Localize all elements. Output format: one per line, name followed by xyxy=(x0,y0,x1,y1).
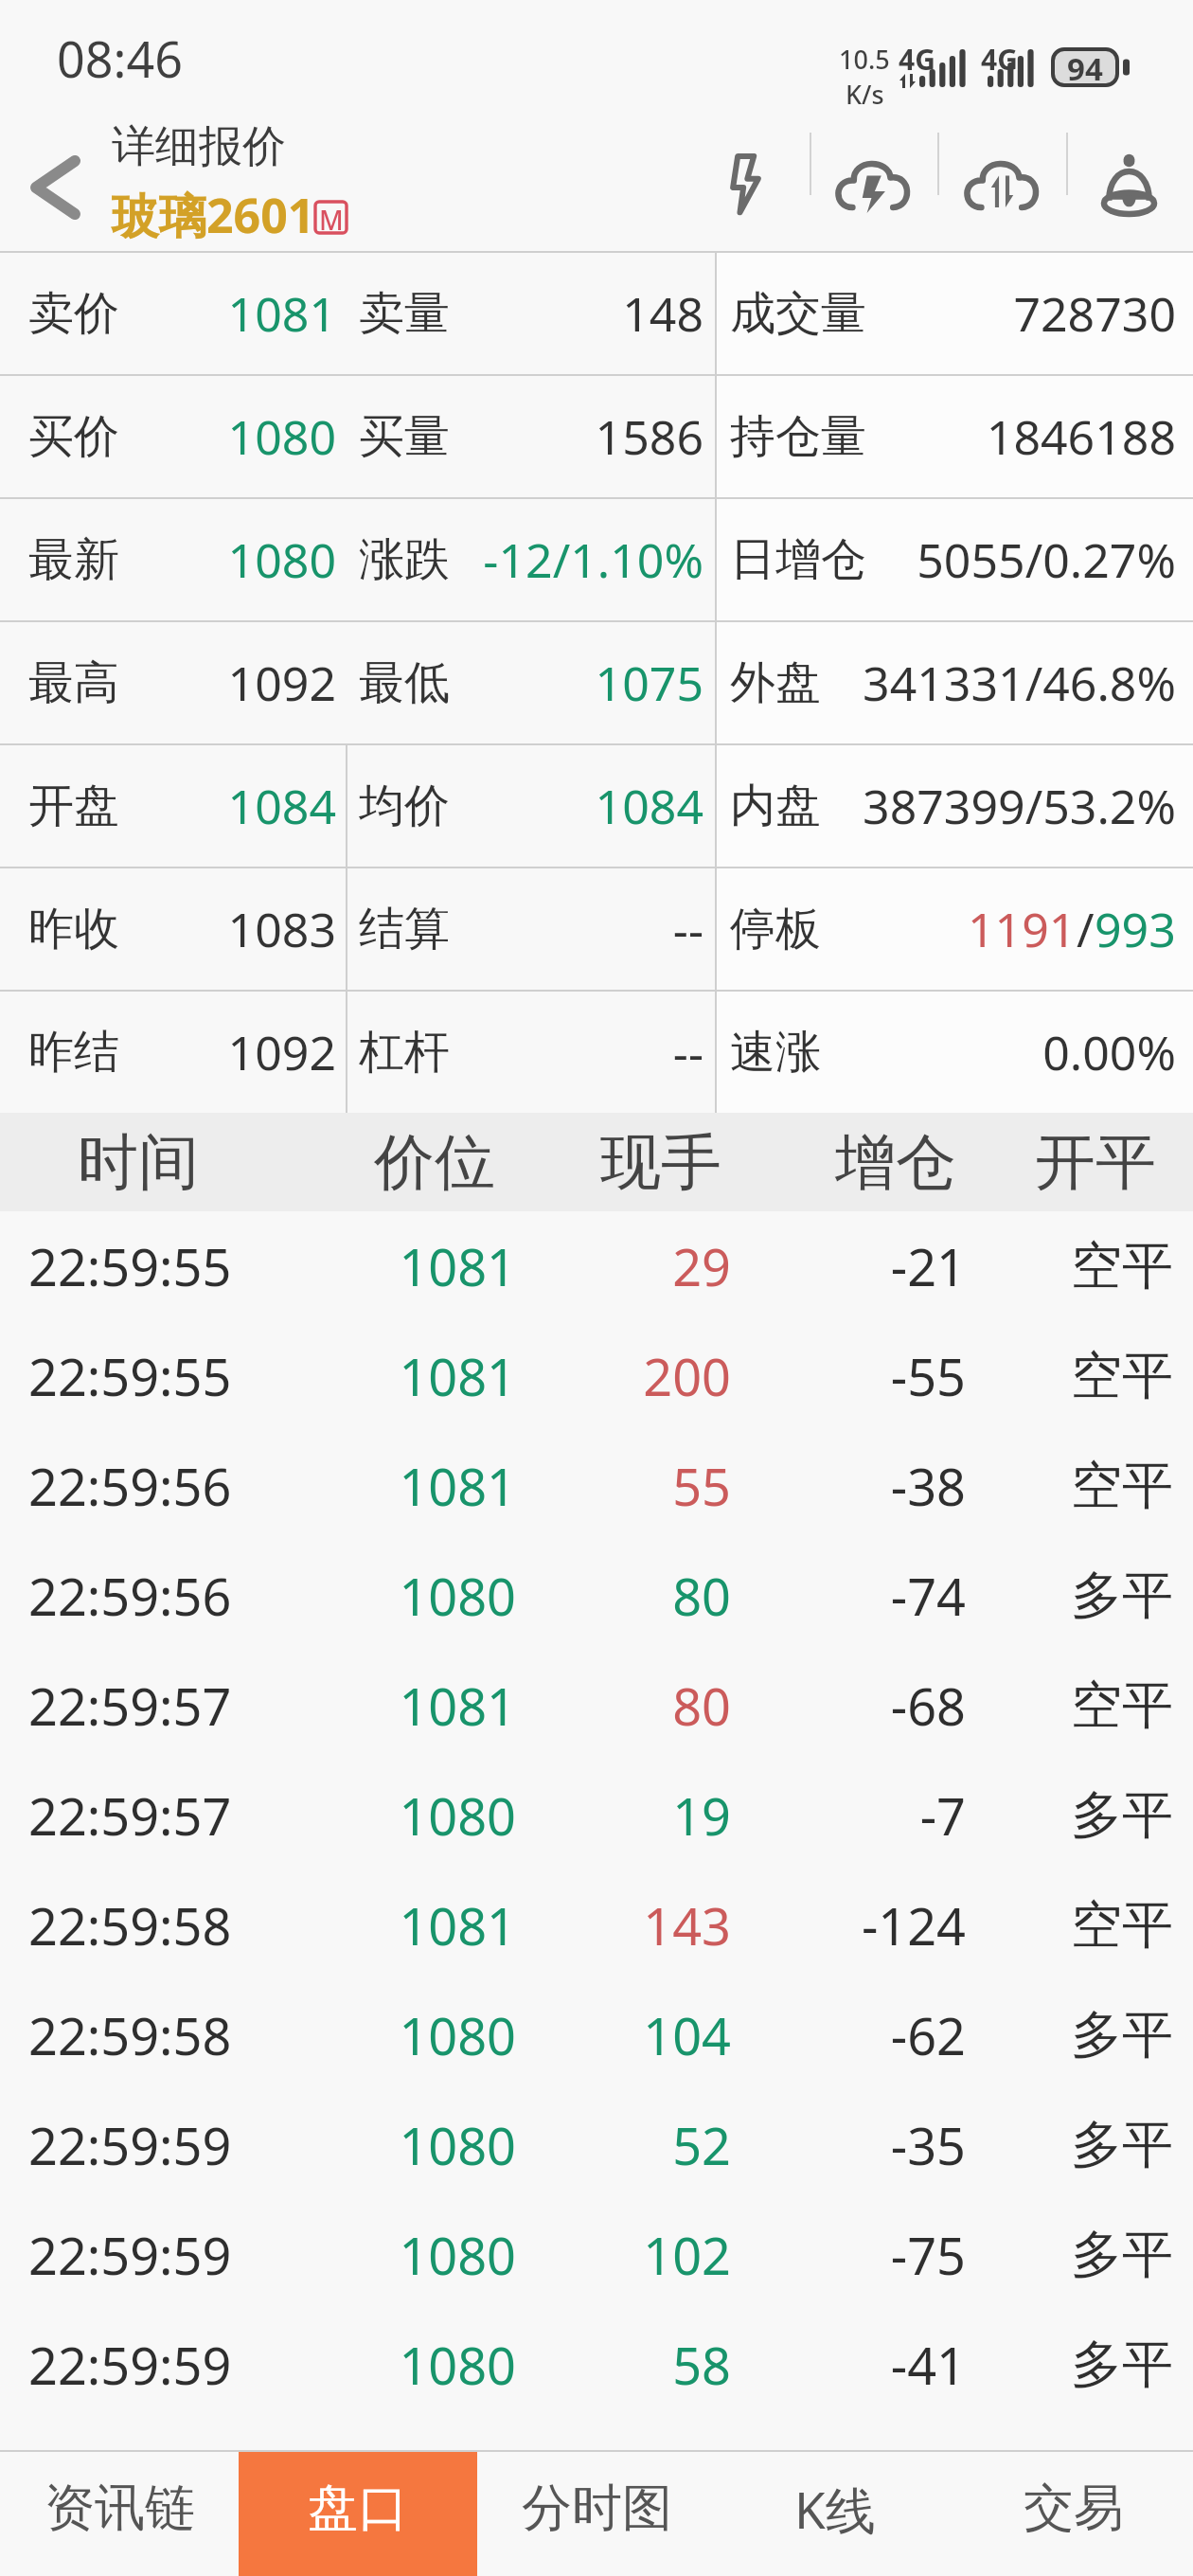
button[interactable]: 22:59:59 xyxy=(0,2090,1193,2200)
staticText: 387399/53.2% xyxy=(821,774,1176,838)
staticText: 728730 xyxy=(866,281,1176,346)
staticText: 昨收 xyxy=(28,901,119,957)
staticText: 空平 xyxy=(975,1454,1173,1518)
staticText: 1080 xyxy=(294,2220,516,2290)
staticText: 0.00% xyxy=(821,1020,1176,1084)
staticText: -55 xyxy=(748,1341,966,1411)
staticText: 价位 xyxy=(374,1124,495,1201)
button[interactable]: 22:59:57 xyxy=(0,1761,1193,1870)
button[interactable]: Cloud sync xyxy=(947,116,1057,251)
staticText: 结算 xyxy=(359,901,450,957)
button[interactable]: 22:59:56 xyxy=(0,1431,1193,1541)
staticText: 29 xyxy=(530,1231,731,1301)
button[interactable]: 22:59:55 xyxy=(0,1321,1193,1431)
button[interactable]: 22:59:57 xyxy=(0,1651,1193,1761)
button[interactable]: 分时图 xyxy=(477,2452,716,2576)
staticText: K线 xyxy=(794,2475,876,2543)
staticText: -- xyxy=(450,1020,703,1084)
staticText: 玻璃2601 xyxy=(112,183,315,247)
staticText: 4G xyxy=(981,40,1018,79)
button[interactable]: 22:59:59 xyxy=(0,2200,1193,2310)
staticText: 1080 xyxy=(294,2000,516,2070)
staticText: 1081 xyxy=(294,1231,516,1301)
staticText: 1080 xyxy=(119,528,336,592)
staticText: 多平 xyxy=(975,2223,1173,2287)
staticText: -7 xyxy=(748,1780,966,1851)
staticText: 现手 xyxy=(600,1124,721,1201)
staticText: 成交量 xyxy=(730,285,866,342)
staticText: 80 xyxy=(530,1561,731,1631)
staticText: 交易 xyxy=(1024,2477,1124,2540)
staticText: 1586 xyxy=(450,404,703,469)
staticText: 空平 xyxy=(975,1893,1173,1958)
staticText: 空平 xyxy=(975,1673,1173,1738)
button[interactable]: Alarm xyxy=(1074,116,1184,251)
staticText: 多平 xyxy=(975,2113,1173,2177)
staticText: 22:59:56 xyxy=(28,1451,232,1521)
staticText: 19 xyxy=(530,1780,731,1851)
staticText: 993 xyxy=(1095,897,1176,961)
staticText: -- xyxy=(450,897,703,961)
staticText: 1092 xyxy=(119,1020,336,1084)
staticText: 1080 xyxy=(294,1780,516,1851)
staticText: 341331/46.8% xyxy=(821,651,1176,715)
staticText: 停板 xyxy=(730,901,821,957)
button[interactable]: 22:59:58 xyxy=(0,1870,1193,1980)
button[interactable]: 交易 xyxy=(954,2452,1193,2576)
staticText: 增仓 xyxy=(835,1124,956,1201)
staticText: 148 xyxy=(450,281,703,346)
button[interactable]: 22:59:59 xyxy=(0,2310,1193,2420)
staticText: 1083 xyxy=(119,897,336,961)
button[interactable]: Cloud alert xyxy=(818,116,928,251)
staticText: 1191 xyxy=(968,897,1077,961)
staticText: 买量 xyxy=(359,408,450,465)
button[interactable]: 22:59:55 xyxy=(0,1211,1193,1321)
button[interactable]: 22:59:56 xyxy=(0,1541,1193,1651)
staticText: 盘口 xyxy=(308,2477,408,2540)
staticText: 卖量 xyxy=(359,285,450,342)
staticText: 内盘 xyxy=(730,778,821,834)
staticText: 买价 xyxy=(28,408,119,465)
staticText: 22:59:55 xyxy=(28,1341,232,1411)
staticText: 22:59:55 xyxy=(28,1231,232,1301)
staticText: 1075 xyxy=(450,651,703,715)
staticText: 22:59:57 xyxy=(28,1780,232,1851)
staticText: 最高 xyxy=(28,654,119,711)
staticText: 空平 xyxy=(975,1234,1173,1298)
button[interactable]: 盘口 xyxy=(239,2452,477,2576)
staticText: -38 xyxy=(748,1451,966,1521)
staticText: 外盘 xyxy=(730,654,821,711)
staticText: 多平 xyxy=(975,1783,1173,1848)
staticText: 时间 xyxy=(78,1124,199,1201)
staticText: 1080 xyxy=(294,1561,516,1631)
staticText: / xyxy=(1077,897,1095,961)
staticText: 22:59:58 xyxy=(28,2000,232,2070)
staticText: 1081 xyxy=(119,281,336,346)
staticText: 多平 xyxy=(975,2333,1173,2397)
button[interactable]: 资讯链 xyxy=(0,2452,239,2576)
staticText: 08:46 xyxy=(57,25,183,92)
staticText: 昨结 xyxy=(28,1024,119,1081)
staticText: 卖价 xyxy=(28,285,119,342)
staticText: 分时图 xyxy=(522,2477,672,2540)
staticText: 22:59:59 xyxy=(28,2220,232,2290)
button[interactable]: Back xyxy=(0,116,112,251)
staticText: M xyxy=(319,202,344,233)
staticText: 22:59:56 xyxy=(28,1561,232,1631)
staticText: 1846188 xyxy=(866,404,1176,469)
staticText: 52 xyxy=(530,2110,731,2180)
staticText: 1081 xyxy=(294,1671,516,1741)
button[interactable]: 22:59:58 xyxy=(0,1980,1193,2090)
staticText: 10.5 xyxy=(839,42,890,77)
staticText: 94 xyxy=(1051,47,1119,87)
staticText: 102 xyxy=(530,2220,731,2290)
staticText: -62 xyxy=(748,2000,966,2070)
staticText: 80 xyxy=(530,1671,731,1741)
staticText: 22:59:58 xyxy=(28,1890,232,1960)
staticText: 多平 xyxy=(975,2003,1173,2067)
staticText: 22:59:59 xyxy=(28,2330,232,2400)
button[interactable]: Flash xyxy=(690,116,800,251)
button[interactable]: K线 xyxy=(716,2452,954,2576)
staticText: 143 xyxy=(530,1890,731,1960)
staticText: 1081 xyxy=(294,1451,516,1521)
